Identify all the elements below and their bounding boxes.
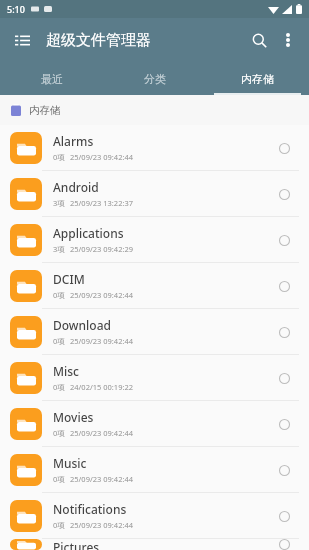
staticText: 0项 [53, 336, 65, 346]
staticText: 0项 [53, 290, 65, 300]
staticText: 0项 [53, 474, 65, 484]
staticText: Movies [53, 409, 94, 425]
button[interactable]: Select Notifications [273, 505, 295, 527]
button[interactable]: Android [0, 171, 309, 217]
staticText: 24/02/15 00:19:22 [70, 382, 134, 392]
staticText: 25/09/23 13:22:37 [70, 198, 134, 208]
staticText: 3项 [53, 198, 65, 208]
staticText: Download [53, 317, 111, 333]
button[interactable]: Notifications [0, 493, 309, 539]
button[interactable]: 分类 [103, 62, 206, 95]
staticText: 内存储 [29, 104, 61, 117]
staticText: 5:10 [7, 3, 25, 15]
staticText: 25/09/23 09:42:44 [70, 520, 134, 530]
button[interactable]: 内存储 [206, 62, 309, 95]
staticText: Applications [53, 225, 124, 241]
staticText: Pictures [53, 539, 100, 550]
button[interactable]: Music [0, 447, 309, 493]
button[interactable]: Misc [0, 355, 309, 401]
staticText: Music [53, 455, 87, 471]
staticText: 25/09/23 09:42:29 [70, 244, 134, 254]
button[interactable]: Select Download [273, 321, 295, 343]
staticText: Alarms [53, 133, 94, 149]
staticText: Misc [53, 363, 79, 379]
button[interactable]: 最近 [0, 62, 103, 95]
staticText: 25/09/23 09:42:44 [70, 474, 134, 484]
button[interactable]: Download [0, 309, 309, 355]
button[interactable]: Select Alarms [273, 137, 295, 159]
button[interactable]: Applications [0, 217, 309, 263]
staticText: 内存储 [241, 72, 274, 86]
button[interactable]: Select Android [273, 183, 295, 205]
button[interactable]: Alarms [0, 125, 309, 171]
button[interactable]: Movies [0, 401, 309, 447]
staticText: Notifications [53, 501, 127, 517]
button[interactable]: Select Misc [273, 367, 295, 389]
button[interactable]: Pictures [0, 539, 309, 550]
staticText: 25/09/23 09:42:44 [70, 428, 134, 438]
staticText: 0项 [53, 428, 65, 438]
button[interactable]: More options [276, 28, 300, 52]
staticText: 3项 [53, 244, 65, 254]
staticText: 分类 [144, 72, 166, 86]
staticText: 0项 [53, 152, 65, 162]
staticText: DCIM [53, 271, 85, 287]
button[interactable]: Open navigation menu [11, 29, 33, 51]
button[interactable]: Select Movies [273, 413, 295, 435]
button[interactable]: Select Applications [273, 229, 295, 251]
staticText: 25/09/23 09:42:44 [70, 290, 134, 300]
button[interactable]: 内存储 [11, 95, 309, 125]
button[interactable]: Search [246, 27, 272, 53]
staticText: 最近 [41, 72, 63, 86]
button[interactable]: Select Music [273, 459, 295, 481]
staticText: Android [53, 179, 99, 195]
button[interactable]: Select DCIM [273, 275, 295, 297]
staticText: 25/09/23 09:42:44 [70, 152, 134, 162]
button[interactable]: Select Pictures [273, 539, 295, 550]
staticText: 0项 [53, 382, 65, 392]
staticText: 0项 [53, 520, 65, 530]
staticText: 25/09/23 09:42:44 [70, 336, 134, 346]
button[interactable]: DCIM [0, 263, 309, 309]
staticText: 超级文件管理器 [46, 31, 151, 50]
